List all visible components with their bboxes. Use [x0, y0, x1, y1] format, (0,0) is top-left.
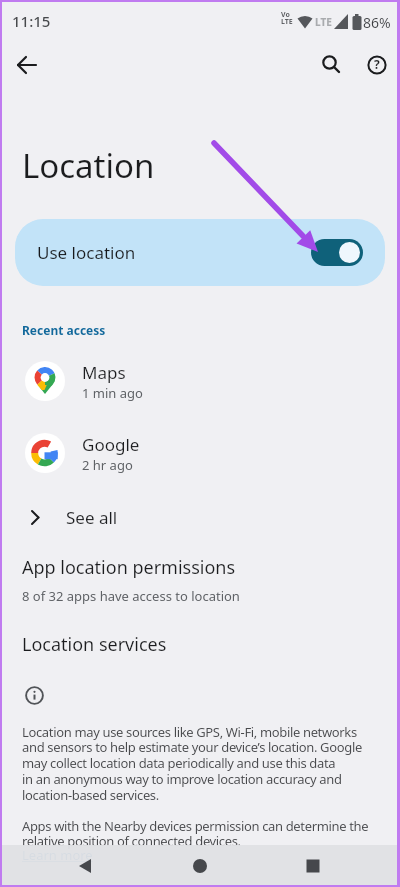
staticText: 86%: [363, 13, 391, 32]
button[interactable]: [300, 853, 326, 879]
staticText: Apps with the Nearby devices permission …: [22, 817, 369, 850]
staticText: LTE: [315, 15, 332, 29]
button[interactable]: App location permissions: [22, 555, 400, 605]
staticText: Location may use sources like GPS, Wi-Fi…: [22, 723, 362, 804]
button[interactable]: [7, 45, 47, 85]
button[interactable]: Learn more: [22, 846, 93, 864]
button[interactable]: Google: [0, 425, 400, 481]
staticText: Location: [22, 143, 155, 188]
button[interactable]: [187, 853, 213, 879]
staticText: 2 hr ago: [82, 456, 133, 474]
staticText: 1 min ago: [82, 384, 143, 402]
staticText: Maps: [82, 361, 126, 384]
staticText: ?: [374, 56, 380, 72]
staticText: Vo LTE: [281, 10, 293, 27]
staticText: App location permissions: [22, 555, 236, 580]
button[interactable]: Use location: [15, 219, 385, 286]
staticText: 11:15: [12, 11, 51, 31]
staticText: See all: [66, 506, 118, 529]
button[interactable]: Maps: [0, 353, 400, 409]
button[interactable]: See all: [0, 497, 400, 537]
button[interactable]: Location services: [22, 632, 167, 657]
button[interactable]: [72, 853, 98, 879]
staticText: Google: [82, 433, 140, 456]
staticText: 8 of 32 apps have access to location: [22, 587, 240, 605]
button[interactable]: [311, 45, 351, 85]
staticText: Use location: [37, 241, 136, 264]
staticText: Recent access: [22, 322, 106, 338]
button[interactable]: ?: [357, 45, 397, 85]
